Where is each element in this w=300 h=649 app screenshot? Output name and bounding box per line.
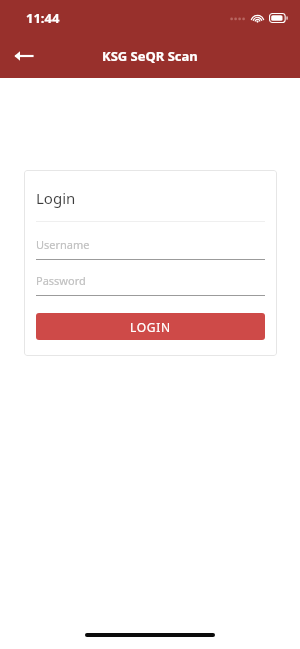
button[interactable]: Username <box>36 237 265 260</box>
staticText: KSG SeQR Scan <box>102 47 198 65</box>
button[interactable]: Back <box>8 40 40 72</box>
staticText: 11:44 <box>26 9 60 27</box>
staticText: LOGIN <box>130 319 171 335</box>
staticText: Username <box>36 237 90 252</box>
button[interactable]: Password <box>36 273 265 296</box>
button[interactable]: LOGIN <box>36 313 265 340</box>
staticText: Password <box>36 273 86 288</box>
staticText: Login <box>36 188 76 208</box>
